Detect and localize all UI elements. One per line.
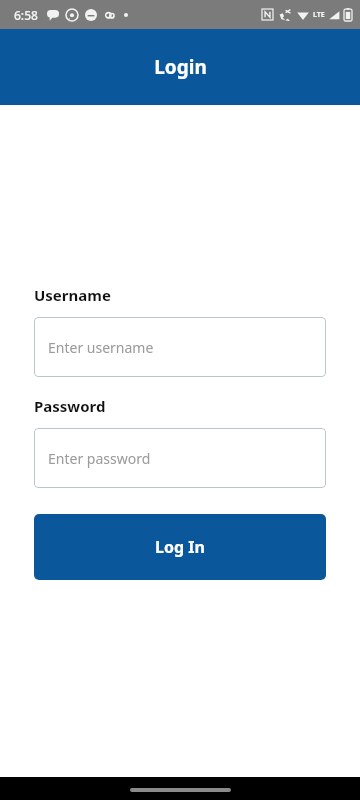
staticText: LTE bbox=[313, 10, 325, 20]
button[interactable]: Enter password bbox=[34, 428, 326, 488]
staticText: Login bbox=[154, 54, 207, 80]
staticText: Enter password bbox=[48, 449, 151, 468]
button[interactable]: Log In bbox=[34, 514, 326, 580]
staticText: Username bbox=[34, 285, 111, 305]
other: Home gesture bar bbox=[130, 788, 231, 792]
button[interactable]: Enter username bbox=[34, 317, 326, 377]
staticText: Enter username bbox=[48, 338, 154, 357]
staticText: Password bbox=[34, 396, 106, 416]
staticText: Log In bbox=[155, 536, 205, 558]
staticText: 6:58 bbox=[14, 7, 38, 23]
